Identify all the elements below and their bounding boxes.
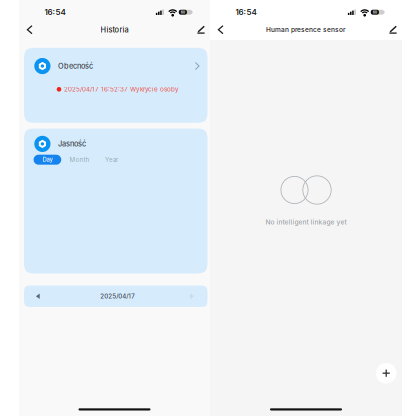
staticText: 2025/04/17 16:52:37 Wykrycie osoby — [64, 85, 179, 93]
button[interactable]: Add — [376, 363, 396, 383]
staticText: 60 — [181, 10, 185, 14]
button[interactable]: Month — [65, 155, 93, 165]
staticText: Month — [69, 156, 89, 163]
staticText: 16:54 — [44, 7, 65, 17]
staticText: Historia — [100, 25, 128, 34]
button[interactable]: Back — [21, 21, 38, 38]
staticText: Year — [105, 156, 118, 163]
button[interactable]: Day — [33, 155, 61, 165]
staticText: Obecność — [58, 62, 93, 70]
button[interactable]: Year — [98, 155, 125, 165]
button[interactable]: Previous day — [27, 285, 49, 307]
staticText: No intelligent linkage yet — [265, 218, 346, 226]
staticText: 2025/04/17 — [100, 292, 135, 300]
staticText: 16:54 — [235, 7, 256, 17]
staticText: Human presence sensor — [266, 26, 346, 34]
button[interactable]: Edit — [192, 21, 209, 38]
staticText: Day — [42, 156, 52, 163]
staticText: Jasność — [58, 139, 86, 148]
button[interactable]: Back — [212, 21, 229, 38]
staticText: 60 — [373, 10, 377, 14]
button[interactable]: Edit — [384, 21, 401, 38]
button[interactable]: Obecność — [24, 48, 207, 123]
